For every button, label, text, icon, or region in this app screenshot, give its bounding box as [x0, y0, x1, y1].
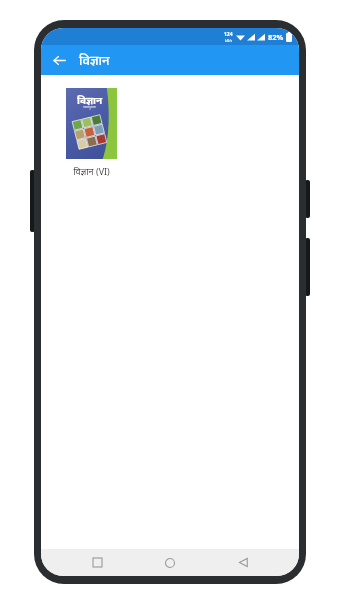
- button[interactable]: Back: [46, 47, 72, 73]
- button[interactable]: Home: [153, 549, 187, 576]
- button[interactable]: विज्ञान: [48, 81, 134, 183]
- staticText: विज्ञान (VI): [73, 165, 110, 177]
- staticText: 124: [224, 31, 233, 38]
- staticText: पाठ्यपुस्तक: [83, 105, 96, 109]
- button[interactable]: Recent apps: [80, 549, 114, 576]
- button[interactable]: Back: [226, 549, 260, 576]
- staticText: kB/s: [225, 38, 233, 43]
- staticText: 82%: [268, 32, 284, 42]
- staticText: विज्ञान: [77, 93, 103, 107]
- staticText: विज्ञान: [79, 51, 110, 69]
